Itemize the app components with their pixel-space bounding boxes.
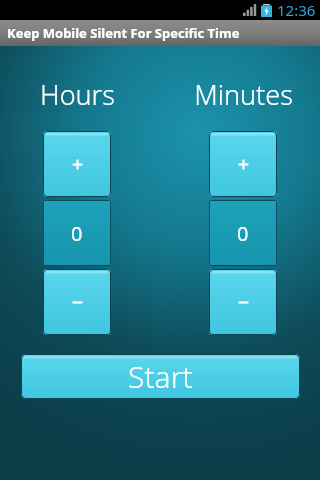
button[interactable]: Increase Minutes xyxy=(209,131,277,197)
staticText: Hours xyxy=(40,76,115,113)
staticText: Minutes xyxy=(194,76,293,113)
staticText: 12:36 xyxy=(277,0,316,20)
button[interactable]: Increase Hours xyxy=(43,131,111,197)
button[interactable]: Decrease Minutes xyxy=(209,269,277,335)
staticText: 0 xyxy=(71,220,83,247)
button[interactable]: Start xyxy=(21,354,300,399)
staticText: Start xyxy=(128,356,193,397)
staticText: 0 xyxy=(237,220,249,247)
button[interactable]: Decrease Hours xyxy=(43,269,111,335)
staticText: Keep Mobile Silent For Specific Time xyxy=(7,24,240,42)
